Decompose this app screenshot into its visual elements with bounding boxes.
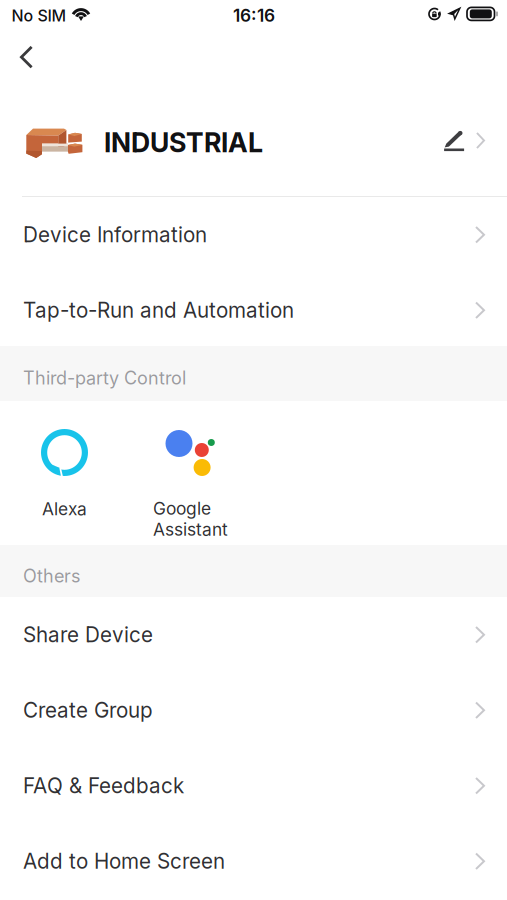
staticText: No SIM <box>11 6 66 25</box>
button[interactable]: Add to Home Screen <box>0 823 507 899</box>
button[interactable]: Device Information <box>0 197 507 272</box>
button[interactable]: Share Device <box>0 597 507 672</box>
button[interactable]: Back <box>0 34 54 80</box>
staticText: 16:16 <box>233 5 275 26</box>
staticText: Tap-to-Run and Automation <box>23 298 294 323</box>
staticText: Others <box>23 565 81 587</box>
staticText: Google Assistant <box>153 498 228 540</box>
staticText: Create Group <box>23 698 153 723</box>
staticText: Device Information <box>23 222 207 247</box>
button[interactable]: INDUSTRIAL <box>0 80 507 196</box>
staticText: Share Device <box>23 622 153 647</box>
button[interactable]: FAQ & Feedback <box>0 748 507 823</box>
button[interactable]: Google Assistant <box>138 429 242 544</box>
staticText: Alexa <box>42 498 87 519</box>
staticText: INDUSTRIAL <box>104 126 263 159</box>
staticText: Third-party Control <box>23 367 186 389</box>
staticText: Add to Home Screen <box>23 849 225 874</box>
button[interactable]: Alexa <box>12 429 116 544</box>
button[interactable]: Tap-to-Run and Automation <box>0 272 507 348</box>
staticText: FAQ & Feedback <box>23 773 184 798</box>
button[interactable]: Create Group <box>0 672 507 748</box>
